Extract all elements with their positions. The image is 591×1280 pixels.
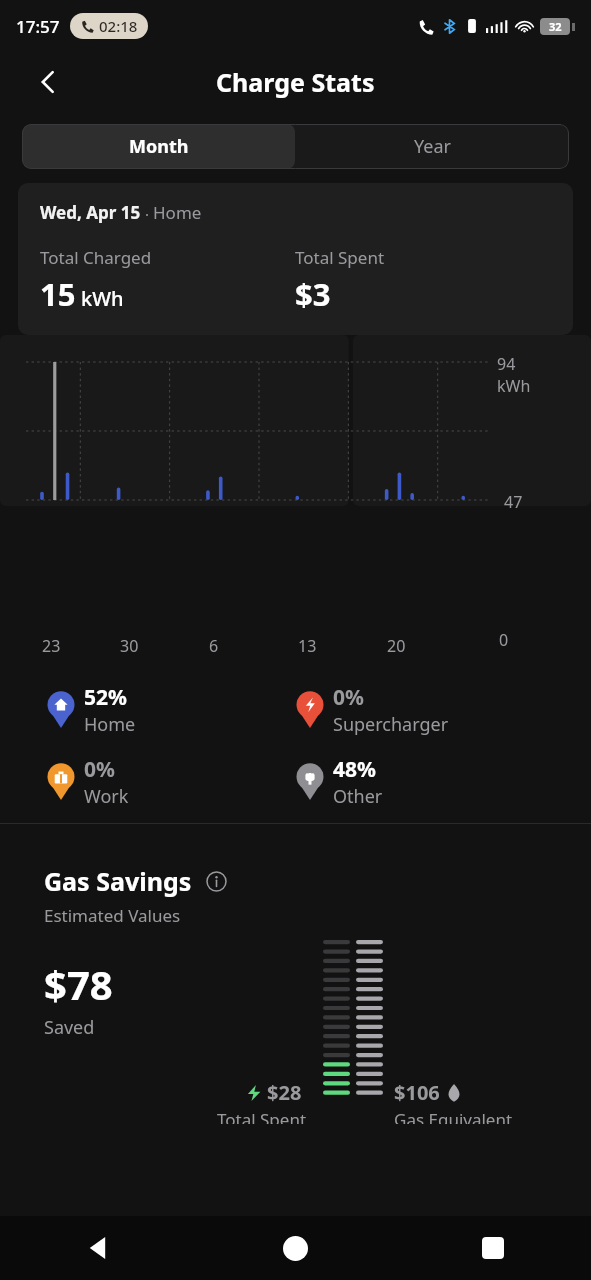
button[interactable]: Month [22, 124, 295, 169]
button[interactable]: 0% [295, 683, 545, 737]
staticText: 13 [298, 635, 317, 657]
staticText: 02:18 [99, 16, 138, 36]
staticText: 0% [84, 755, 115, 784]
staticText: $28 [267, 1079, 302, 1106]
staticText: Wed, Apr 15 [40, 201, 141, 224]
staticText: 17:57 [16, 15, 60, 38]
staticText: 6 [209, 635, 219, 657]
staticText: Home [153, 201, 202, 224]
staticText: 0% [333, 683, 364, 712]
button[interactable]: Back [0, 1216, 197, 1280]
button[interactable]: Year [295, 124, 569, 169]
staticText: Month [129, 134, 189, 159]
staticText: Gas Savings [44, 864, 192, 898]
staticText: · [141, 204, 153, 224]
staticText: 0 [499, 629, 509, 651]
staticText: 23 [42, 635, 61, 657]
button[interactable]: Back [26, 60, 70, 104]
staticText: Charge Stats [216, 65, 375, 99]
staticText: Work [84, 784, 129, 809]
button[interactable]: 52% [46, 683, 295, 737]
staticText: Total Spent [217, 1108, 307, 1124]
button[interactable]: 0% [46, 755, 295, 809]
staticText: Home [84, 712, 136, 737]
staticText: kWh [497, 375, 531, 397]
staticText: 30 [120, 635, 139, 657]
staticText: Supercharger [333, 712, 449, 737]
staticText: 20 [387, 635, 406, 657]
button[interactable]: 48% [295, 755, 545, 809]
staticText: kWh [81, 285, 124, 312]
staticText: Total Charged [40, 246, 152, 269]
staticText: 48% [333, 755, 376, 784]
staticText: Total Spent [295, 246, 385, 269]
staticText: Gas Equivalent [394, 1108, 513, 1124]
staticText: 47 [504, 491, 523, 513]
staticText: 32 [549, 19, 562, 34]
staticText: $78 [44, 957, 113, 1011]
staticText: Other [333, 784, 383, 809]
button[interactable]: Home [197, 1216, 394, 1280]
staticText: $106 [394, 1079, 440, 1106]
staticText: 52% [84, 683, 127, 712]
button[interactable]: Info [204, 869, 228, 893]
staticText: 15 [40, 273, 76, 315]
staticText: Year [414, 134, 451, 159]
staticText: $3 [295, 273, 331, 315]
button[interactable]: Recents [394, 1216, 591, 1280]
staticText: Estimated Values [44, 904, 181, 927]
staticText: 94 [497, 353, 516, 375]
staticText: Saved [44, 1015, 95, 1040]
